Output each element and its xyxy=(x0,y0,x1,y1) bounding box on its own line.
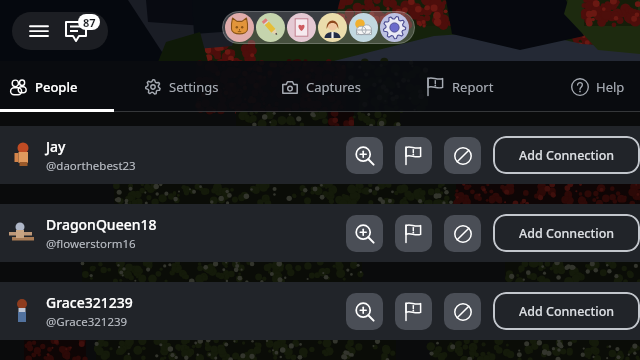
button[interactable]: Pets xyxy=(225,13,254,42)
staticText: Report xyxy=(452,78,494,96)
button[interactable]: Edit xyxy=(256,13,285,42)
button[interactable]: Add Connection xyxy=(493,214,640,252)
button[interactable]: People xyxy=(10,61,78,112)
staticText: @Grace321239 xyxy=(46,314,128,330)
button[interactable]: Grace321239 xyxy=(0,282,640,340)
staticText: Captures xyxy=(306,78,361,96)
button[interactable]: Report xyxy=(427,61,494,112)
button[interactable]: Add Connection xyxy=(493,292,640,330)
staticText: People xyxy=(35,78,78,96)
button[interactable]: Weather xyxy=(349,13,378,42)
button[interactable]: Block xyxy=(444,137,481,174)
button[interactable]: Menu xyxy=(18,12,60,50)
button[interactable]: Chat xyxy=(60,12,104,50)
button[interactable]: Block xyxy=(444,215,481,252)
staticText: 87 xyxy=(83,15,96,30)
staticText: Grace321239 xyxy=(46,293,133,312)
button[interactable]: Zoom in xyxy=(346,293,383,330)
button[interactable]: Settings xyxy=(380,13,409,42)
button[interactable]: Report xyxy=(395,293,432,330)
button[interactable]: DragonQueen18 xyxy=(0,204,640,262)
button[interactable]: Report xyxy=(395,137,432,174)
staticText: @flowerstorm16 xyxy=(46,236,136,252)
staticText: Help xyxy=(596,78,625,96)
button[interactable]: Zoom in xyxy=(346,137,383,174)
staticText: @daorthebest23 xyxy=(46,158,136,174)
button[interactable]: Block xyxy=(444,293,481,330)
button[interactable]: Captures xyxy=(281,61,361,112)
staticText: Add Connection xyxy=(519,303,615,320)
staticText: Add Connection xyxy=(519,147,615,164)
button[interactable]: Help xyxy=(571,61,625,112)
button[interactable]: Cards xyxy=(287,13,316,42)
button[interactable]: Report xyxy=(395,215,432,252)
button[interactable]: Avatar xyxy=(318,13,347,42)
staticText: DragonQueen18 xyxy=(46,215,157,234)
staticText: Settings xyxy=(169,78,219,96)
staticText: Add Connection xyxy=(519,225,615,242)
button[interactable]: Add Connection xyxy=(493,136,640,174)
button[interactable]: Jay xyxy=(0,126,640,184)
button[interactable]: Settings xyxy=(144,61,219,112)
staticText: Jay xyxy=(46,137,66,156)
button[interactable]: Zoom in xyxy=(346,215,383,252)
